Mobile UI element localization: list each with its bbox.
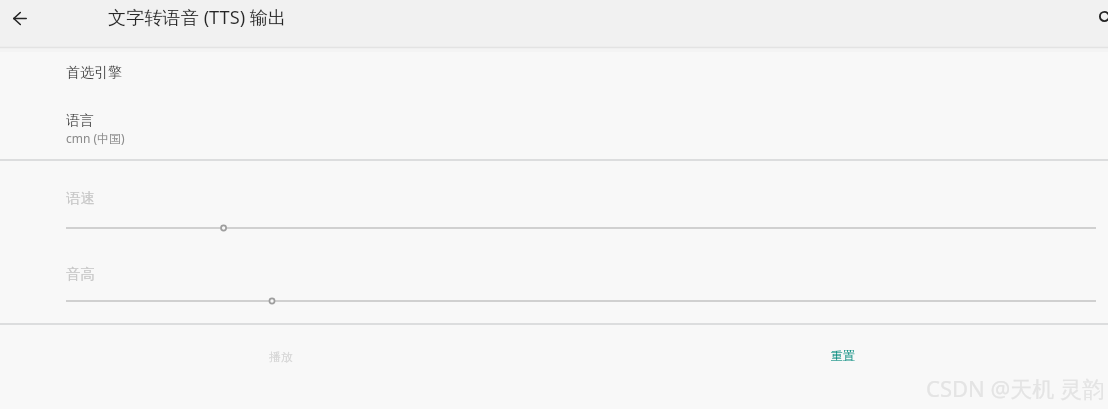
button[interactable]: 重置 <box>794 338 892 372</box>
staticText: 播放 <box>269 349 293 364</box>
button[interactable]: 音高 <box>0 242 1108 323</box>
button[interactable]: More options <box>1086 0 1108 34</box>
button[interactable]: 语速 <box>0 160 1108 242</box>
button[interactable]: 首选引擎 <box>0 48 1108 96</box>
staticText: 语速 <box>66 189 95 207</box>
staticText: CSDN @天机 灵韵 <box>926 373 1104 403</box>
staticText: 首选引擎 <box>66 64 122 82</box>
button[interactable]: Back <box>2 0 38 36</box>
button[interactable]: 语言 <box>0 96 1108 159</box>
staticText: 语言 <box>66 112 94 130</box>
button[interactable]: 播放 <box>232 339 330 373</box>
staticText: 文字转语音 (TTS) 输出 <box>108 5 287 30</box>
staticText: 音高 <box>66 265 95 283</box>
staticText: cmn (中国) <box>66 130 125 146</box>
staticText: 重置 <box>831 348 855 363</box>
